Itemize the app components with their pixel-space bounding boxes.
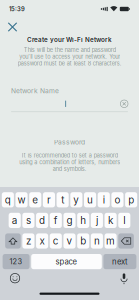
- staticText: 15:39: [9, 5, 25, 13]
- staticText: f: [54, 214, 58, 226]
- staticText: s: [26, 214, 31, 226]
- button[interactable]: Shift: [5, 233, 21, 249]
- button[interactable]: e: [29, 192, 41, 207]
- staticText: x: [40, 235, 45, 247]
- button[interactable]: h: [77, 213, 89, 228]
- button[interactable]: next: [103, 254, 136, 269]
- staticText: y: [73, 194, 79, 206]
- button[interactable]: a: [9, 213, 21, 228]
- button[interactable]: Dictation: [113, 271, 135, 285]
- button[interactable]: t: [57, 192, 69, 207]
- button[interactable]: 123: [3, 254, 30, 269]
- staticText: next: [112, 257, 128, 266]
- staticText: a: [12, 214, 18, 226]
- staticText: i: [103, 194, 105, 206]
- staticText: h: [80, 214, 86, 226]
- staticText: r: [47, 194, 51, 206]
- staticText: j: [96, 214, 98, 226]
- button[interactable]: Clear text: [120, 100, 128, 108]
- button[interactable]: w: [15, 192, 28, 207]
- staticText: k: [108, 214, 113, 226]
- button[interactable]: y: [70, 192, 82, 207]
- button[interactable]: n: [91, 233, 103, 249]
- button[interactable]: f: [50, 213, 62, 228]
- staticText: l: [123, 214, 125, 226]
- button[interactable]: v: [63, 233, 76, 249]
- staticText: d: [39, 214, 45, 226]
- staticText: p: [128, 194, 134, 206]
- staticText: g: [66, 214, 72, 226]
- staticText: 123: [10, 257, 23, 266]
- button[interactable]: r: [43, 192, 55, 207]
- staticText: Network Name: [11, 87, 59, 95]
- button[interactable]: g: [63, 213, 76, 228]
- staticText: b: [80, 235, 86, 247]
- button[interactable]: o: [111, 192, 123, 207]
- button[interactable]: i: [98, 192, 110, 207]
- staticText: w: [18, 194, 26, 206]
- button[interactable]: c: [50, 233, 62, 249]
- staticText: This will be the name and password you'l…: [17, 47, 121, 67]
- staticText: n: [94, 235, 100, 247]
- staticText: c: [53, 235, 59, 247]
- button[interactable]: m: [105, 233, 117, 249]
- button[interactable]: l: [118, 213, 130, 228]
- button[interactable]: j: [91, 213, 103, 228]
- button[interactable]: space: [31, 254, 102, 269]
- staticText: Password: [54, 138, 85, 146]
- button[interactable]: s: [22, 213, 34, 228]
- button[interactable]: Delete: [118, 233, 134, 249]
- button[interactable]: z: [22, 233, 34, 249]
- button[interactable]: d: [36, 213, 48, 228]
- button[interactable]: k: [105, 213, 117, 228]
- button[interactable]: p: [125, 192, 137, 207]
- staticText: z: [26, 235, 31, 247]
- staticText: o: [114, 194, 120, 206]
- staticText: Create your Wi-Fi Network: [27, 36, 112, 44]
- button[interactable]: u: [84, 192, 96, 207]
- staticText: space: [55, 257, 77, 266]
- button[interactable]: x: [36, 233, 48, 249]
- staticText: t: [61, 194, 64, 206]
- staticText: q: [5, 194, 11, 206]
- staticText: e: [32, 194, 38, 206]
- button[interactable]: Emoji: [4, 271, 26, 285]
- staticText: It is recommended to set a password usin…: [19, 152, 120, 172]
- button[interactable]: q: [2, 192, 14, 207]
- button[interactable]: Close: [3, 21, 21, 33]
- button[interactable]: b: [77, 233, 89, 249]
- staticText: u: [87, 194, 93, 206]
- staticText: m: [106, 235, 115, 247]
- staticText: v: [66, 235, 72, 247]
